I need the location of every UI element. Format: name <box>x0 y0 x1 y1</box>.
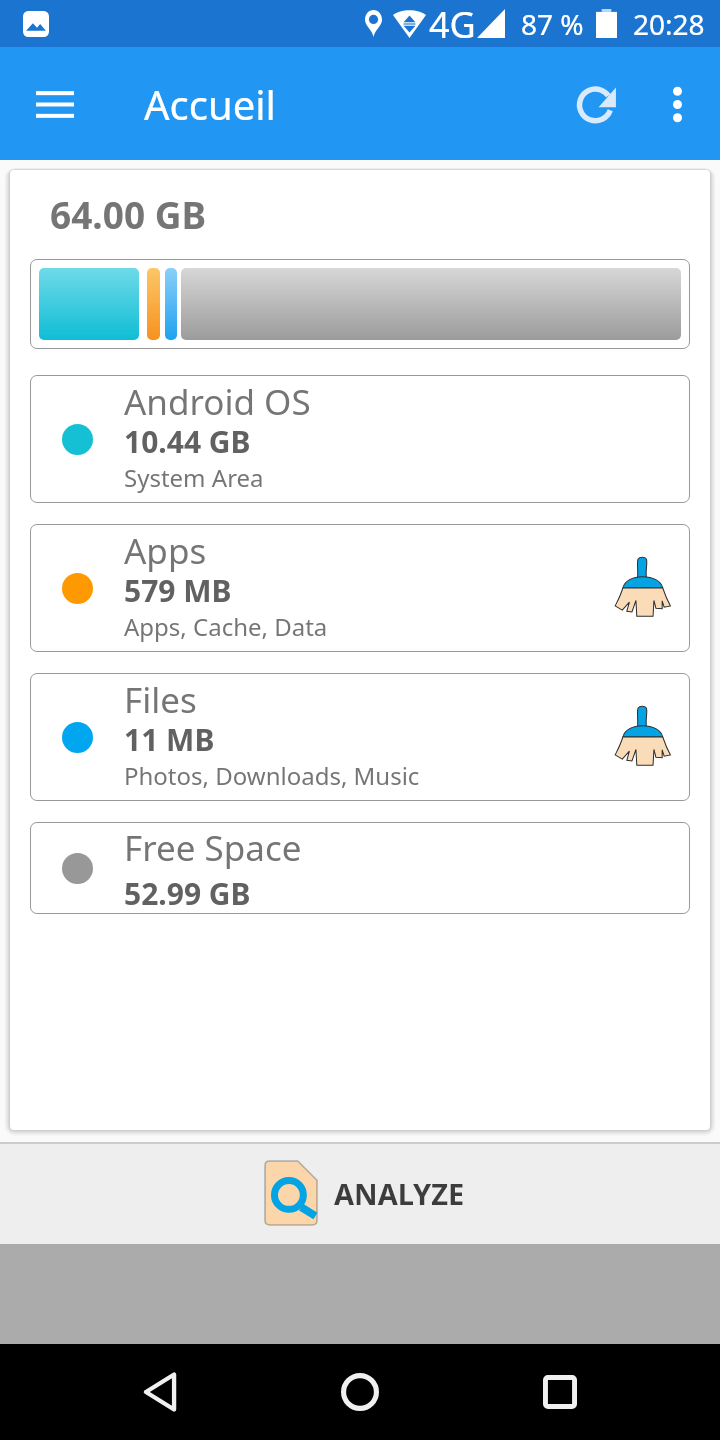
button[interactable]: Refresh <box>572 68 644 140</box>
staticText: ANALYZE <box>334 1174 465 1213</box>
button[interactable]: Android OS <box>30 375 690 503</box>
staticText: 87 % <box>521 5 584 43</box>
staticText: 20:28 <box>633 5 705 43</box>
button[interactable]: Recent apps <box>520 1352 600 1432</box>
staticText: 52.99 GB <box>124 873 251 914</box>
staticText: 64.00 GB <box>50 189 207 239</box>
staticText: Accueil <box>144 77 276 131</box>
staticText: 579 MB <box>124 570 232 611</box>
staticText: 11 MB <box>124 719 215 760</box>
button[interactable]: Back <box>120 1352 200 1432</box>
staticText: Free Space <box>124 824 302 872</box>
staticText: Apps, Cache, Data <box>124 610 328 643</box>
button[interactable]: Free Space <box>30 822 690 914</box>
button[interactable]: ANALYZE <box>254 1161 471 1225</box>
button[interactable]: Menu <box>25 74 85 134</box>
staticText: 4G <box>429 0 476 47</box>
button[interactable]: Apps <box>30 524 690 652</box>
staticText: Apps <box>124 527 207 575</box>
button[interactable]: Home <box>320 1352 400 1432</box>
button[interactable]: Files <box>30 673 690 801</box>
staticText: System Area <box>124 461 264 494</box>
staticText: Android OS <box>124 378 311 426</box>
staticText: Files <box>124 676 197 724</box>
staticText: Photos, Downloads, Music <box>124 759 420 792</box>
button[interactable]: More options <box>644 68 716 140</box>
staticText: 10.44 GB <box>124 421 251 462</box>
